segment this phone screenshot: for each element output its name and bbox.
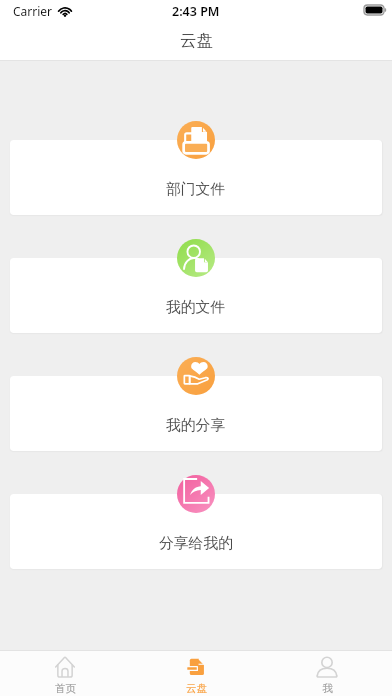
staticText: 分享给我的 — [159, 534, 233, 553]
staticText: 云盘 — [186, 682, 207, 695]
staticText: 我 — [322, 682, 333, 695]
staticText: 云盘 — [180, 30, 213, 51]
button[interactable]: Home — [15, 651, 115, 696]
staticText: 我的文件 — [166, 298, 226, 317]
staticText: Carrier — [13, 3, 53, 19]
button[interactable]: Cloud Drive — [146, 651, 246, 696]
button[interactable]: Profile — [277, 651, 377, 696]
staticText: 2:43 PM — [172, 3, 220, 20]
staticText: 我的分享 — [166, 416, 226, 435]
button[interactable]: 部门文件 — [10, 140, 382, 215]
button[interactable]: 我的分享 — [10, 376, 382, 451]
staticText: 首页 — [55, 682, 76, 695]
staticText: 部门文件 — [166, 180, 226, 199]
button[interactable]: 分享给我的 — [10, 494, 382, 569]
button[interactable]: 我的文件 — [10, 258, 382, 333]
